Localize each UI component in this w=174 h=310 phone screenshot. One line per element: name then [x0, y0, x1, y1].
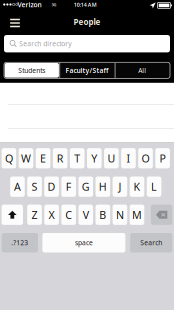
staticText: D — [48, 180, 56, 194]
staticText: E — [40, 151, 46, 165]
staticText: Search directory — [19, 39, 71, 48]
staticText: X — [49, 208, 55, 222]
button[interactable]: O — [138, 148, 153, 168]
button[interactable]: Search — [130, 233, 172, 252]
button[interactable]: C — [61, 205, 76, 225]
staticText: T — [74, 151, 80, 165]
button[interactable]: T — [70, 148, 84, 168]
staticText: V — [83, 208, 89, 222]
staticText: L — [151, 180, 157, 194]
staticText: F — [66, 180, 72, 194]
staticText: C — [65, 208, 72, 222]
staticText: Faculty/Staff — [65, 66, 108, 75]
button[interactable]: S — [27, 176, 42, 197]
staticText: W — [21, 151, 31, 165]
button[interactable]: W — [19, 148, 33, 168]
button[interactable]: G — [78, 176, 93, 197]
staticText: R — [57, 151, 64, 165]
button[interactable]: P — [155, 148, 170, 168]
staticText: Verizon — [18, 0, 42, 9]
button[interactable]: B — [95, 205, 110, 225]
staticText: 3G — [52, 2, 57, 7]
staticText: All — [138, 66, 146, 75]
button[interactable]: L — [147, 176, 161, 197]
button[interactable]: R — [53, 148, 67, 168]
staticText: 10:14 AM — [74, 1, 97, 8]
staticText: space — [75, 238, 93, 247]
staticText: P — [160, 151, 166, 165]
button[interactable]: J — [113, 176, 127, 197]
button[interactable]: N — [113, 205, 127, 225]
staticText: Z — [31, 208, 37, 222]
button[interactable]: M — [130, 205, 144, 225]
button[interactable]: X — [44, 205, 59, 225]
button[interactable]: Students — [5, 63, 59, 78]
button[interactable]: F — [61, 176, 76, 197]
button[interactable]: Shift — [2, 205, 23, 225]
button[interactable]: .?123 — [2, 233, 38, 252]
staticText: Search — [140, 238, 162, 247]
button[interactable]: V — [78, 205, 93, 225]
staticText: S — [31, 180, 37, 194]
staticText: Students — [18, 66, 45, 75]
staticText: I — [126, 151, 130, 165]
button[interactable]: E — [36, 148, 50, 168]
button[interactable]: D — [44, 176, 59, 197]
button[interactable]: Delete — [151, 205, 172, 225]
button[interactable]: U — [104, 148, 119, 168]
staticText: J — [118, 180, 121, 194]
button[interactable]: Y — [87, 148, 102, 168]
button[interactable]: Faculty/Staff — [59, 62, 115, 78]
staticText: O — [141, 151, 149, 165]
staticText: N — [116, 208, 124, 222]
button[interactable]: Z — [27, 205, 42, 225]
staticText: .?123 — [11, 238, 28, 247]
staticText: M — [132, 208, 142, 222]
staticText: H — [99, 180, 107, 194]
button[interactable]: A — [10, 176, 25, 197]
staticText: Y — [91, 151, 97, 165]
staticText: A — [14, 180, 21, 194]
staticText: People — [73, 17, 100, 27]
staticText: Q — [5, 151, 13, 165]
staticText: U — [107, 151, 115, 165]
button[interactable]: Search directory — [4, 35, 170, 52]
button[interactable]: All — [115, 62, 170, 78]
staticText: K — [133, 180, 140, 194]
button[interactable]: H — [95, 176, 110, 197]
button[interactable]: K — [130, 176, 144, 197]
staticText: B — [99, 208, 106, 222]
button[interactable]: Q — [2, 148, 16, 168]
button[interactable]: Menu — [4, 13, 25, 32]
button[interactable]: space — [42, 233, 125, 252]
staticText: G — [82, 180, 90, 194]
button[interactable]: I — [121, 148, 136, 168]
